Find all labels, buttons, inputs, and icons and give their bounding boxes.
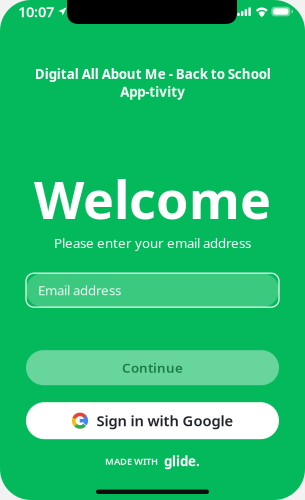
staticText: Continue	[122, 359, 183, 376]
staticText: 10:07	[18, 2, 54, 21]
staticText: Digital All About Me - Back to School Ap…	[34, 65, 270, 100]
button[interactable]: Continue	[0, 350, 305, 385]
staticText: Sign in with Google	[96, 411, 233, 430]
staticText: Please enter your email address	[54, 234, 251, 252]
staticText: MADE WITH	[105, 455, 158, 467]
button[interactable]: Sign in with Google	[0, 402, 305, 439]
staticText: Welcome	[34, 164, 271, 233]
staticText: glide.	[164, 452, 200, 470]
staticText: Email address	[38, 281, 121, 299]
